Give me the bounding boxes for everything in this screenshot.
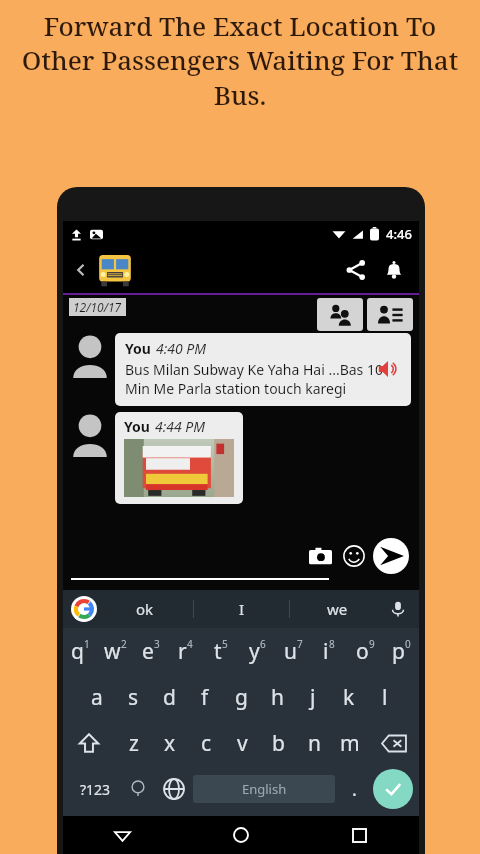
staticText: l	[382, 683, 388, 712]
button[interactable]: Voice input	[385, 596, 411, 622]
staticText: m	[340, 729, 360, 758]
button[interactable]: v	[224, 720, 260, 766]
button[interactable]: u	[275, 628, 311, 674]
staticText: i	[323, 637, 329, 666]
button[interactable]: You	[115, 333, 411, 406]
staticText: j	[310, 683, 316, 712]
button[interactable]: Camera	[303, 539, 337, 573]
button[interactable]: g	[223, 674, 259, 720]
button[interactable]: Share	[337, 251, 375, 289]
button[interactable]: y	[239, 628, 275, 674]
button[interactable]: w	[98, 628, 133, 674]
button[interactable]: Notifications	[375, 251, 413, 289]
staticText: ?123	[80, 780, 111, 799]
staticText: v	[237, 729, 248, 758]
button[interactable]: i	[311, 628, 347, 674]
staticText: .	[352, 777, 357, 802]
button[interactable]: q	[63, 628, 98, 674]
staticText: z	[129, 729, 139, 758]
button[interactable]: Emoji	[337, 539, 371, 573]
staticText: 9	[369, 637, 375, 651]
staticText: y	[249, 637, 260, 666]
staticText: 3	[154, 637, 160, 651]
button[interactable]: f	[187, 674, 223, 720]
staticText: 4:46	[386, 225, 412, 243]
staticText: 8	[329, 637, 335, 651]
staticText: g	[235, 683, 248, 712]
staticText: n	[308, 729, 321, 758]
button[interactable]: Recents	[300, 816, 419, 854]
staticText: I	[239, 599, 245, 619]
button[interactable]: You	[115, 412, 243, 504]
staticText: 1	[84, 637, 90, 651]
button[interactable]: d	[151, 674, 187, 720]
button[interactable]: p	[383, 628, 419, 674]
button[interactable]: r	[168, 628, 203, 674]
button[interactable]: Back	[69, 258, 93, 282]
staticText: u	[284, 637, 297, 666]
staticText: Forward The Exact Location To Other Pass…	[10, 8, 470, 113]
button[interactable]: Change language	[155, 766, 193, 812]
button[interactable]: a	[79, 674, 115, 720]
button[interactable]: I	[194, 590, 289, 628]
button[interactable]: Enter	[373, 769, 413, 809]
staticText: e	[142, 637, 154, 666]
button[interactable]: e	[133, 628, 168, 674]
button[interactable]: k	[331, 674, 367, 720]
button[interactable]: s	[115, 674, 151, 720]
button[interactable]: Home	[181, 816, 300, 854]
staticText: w	[104, 637, 121, 666]
staticText: 2	[121, 637, 127, 651]
button[interactable]: Emoji keyboard	[121, 766, 155, 812]
staticText: 12/10/17	[73, 299, 122, 315]
button[interactable]: h	[259, 674, 295, 720]
staticText: 0	[405, 637, 411, 651]
staticText: 4:40 PM	[156, 339, 207, 358]
staticText: s	[128, 683, 139, 712]
staticText: o	[356, 637, 369, 666]
button[interactable]: Back	[63, 816, 181, 854]
button[interactable]: c	[188, 720, 224, 766]
staticText: we	[327, 599, 348, 619]
staticText: ok	[136, 599, 154, 619]
staticText: b	[272, 729, 285, 758]
button[interactable]: m	[332, 720, 368, 766]
button[interactable]: x	[152, 720, 188, 766]
staticText: r	[178, 637, 187, 666]
staticText: a	[91, 683, 103, 712]
button[interactable]: Contact details	[367, 298, 413, 331]
staticText: h	[271, 683, 284, 712]
button[interactable]: t	[203, 628, 239, 674]
button[interactable]: Group members	[317, 298, 363, 331]
staticText: p	[392, 637, 405, 666]
button[interactable]: z	[115, 720, 152, 766]
staticText: d	[163, 683, 176, 712]
staticText: f	[201, 683, 209, 712]
button[interactable]: n	[296, 720, 332, 766]
button[interactable]: Backspace	[368, 720, 419, 766]
button[interactable]: we	[290, 590, 385, 628]
button[interactable]: Send	[371, 536, 411, 576]
button[interactable]: b	[260, 720, 296, 766]
staticText: Bus Milan Subway Ke Yaha Hai ...Bas 10 M…	[125, 360, 383, 398]
button[interactable]: Shift	[63, 720, 115, 766]
staticText: 4	[187, 637, 193, 651]
staticText: 6	[260, 637, 266, 651]
button[interactable]: ok	[97, 590, 193, 628]
button[interactable]: o	[347, 628, 383, 674]
staticText: English	[242, 780, 287, 798]
staticText: t	[214, 637, 222, 666]
button[interactable]: ?123	[69, 766, 121, 812]
staticText: 4:44 PM	[155, 417, 206, 436]
staticText: c	[201, 729, 212, 758]
button[interactable]: l	[367, 674, 403, 720]
button[interactable]: j	[295, 674, 331, 720]
staticText: x	[164, 729, 176, 758]
button[interactable]: Google	[71, 596, 97, 622]
button[interactable]: Play audio	[375, 356, 401, 382]
staticText: You	[124, 417, 150, 436]
button[interactable]: English	[193, 775, 335, 803]
button[interactable]: .	[335, 766, 373, 812]
staticText: You	[125, 339, 151, 358]
staticText: k	[343, 683, 355, 712]
